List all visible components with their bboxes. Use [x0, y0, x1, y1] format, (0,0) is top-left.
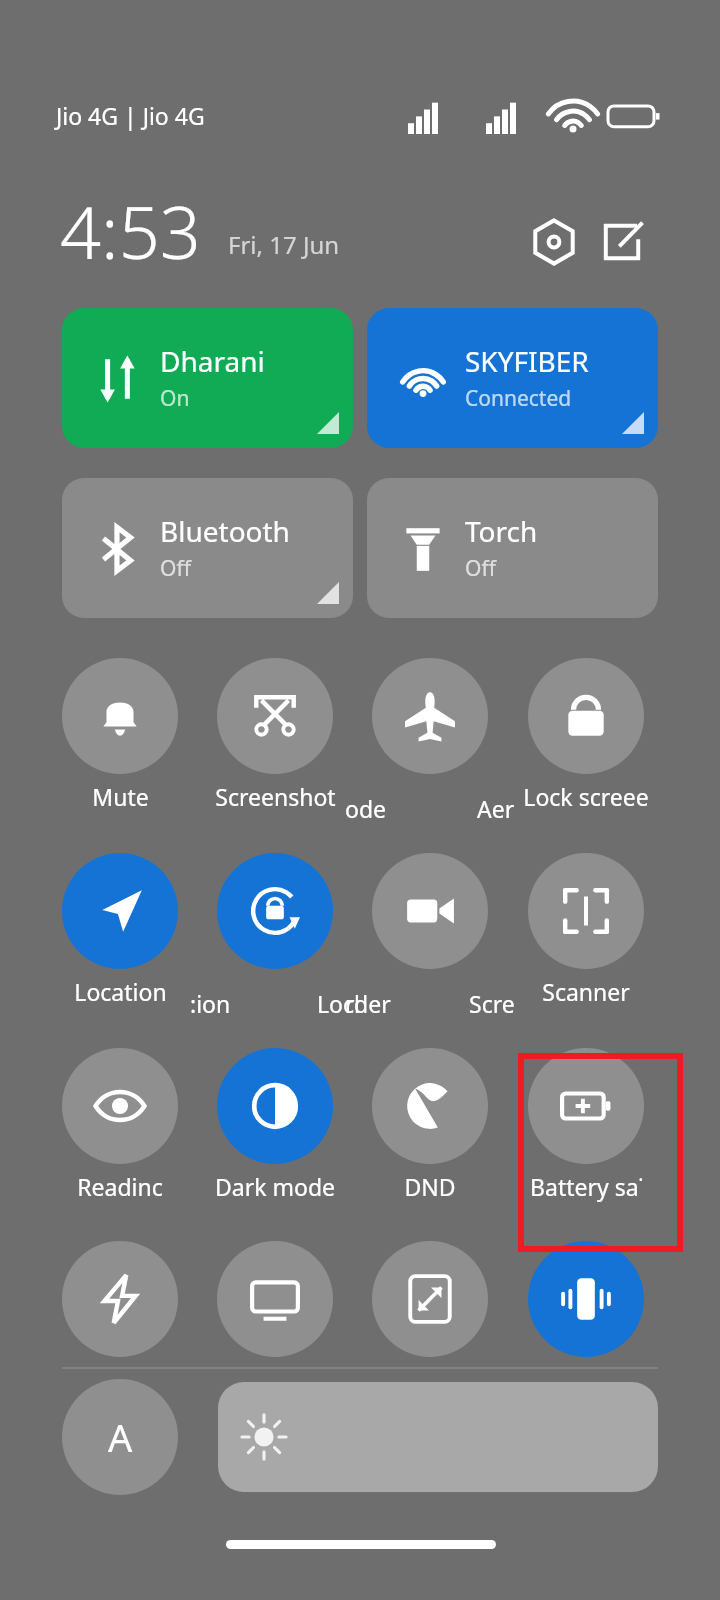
button[interactable]: Quick setting — [217, 1241, 333, 1357]
staticText: Jio 4G | Jio 4G — [56, 100, 205, 131]
staticText: ode — [345, 793, 387, 824]
staticText: Torch — [465, 512, 538, 550]
staticText: DND — [404, 1171, 456, 1202]
button[interactable]: Bluetooth — [62, 478, 353, 618]
staticText: Location — [74, 976, 167, 1007]
button[interactable]: Dark mode — [217, 1048, 333, 1164]
staticText: :ion — [190, 988, 231, 1019]
staticText: Scre — [469, 988, 515, 1019]
button[interactable]: SKYFIBER — [367, 308, 658, 448]
staticText: Off — [465, 554, 496, 583]
staticText: On — [160, 384, 190, 413]
staticText: Screenshot — [215, 781, 336, 812]
button[interactable]: Quick setting — [372, 1241, 488, 1357]
button[interactable]: Settings — [527, 215, 581, 269]
staticText: Dharani — [160, 342, 265, 380]
staticText: rder — [345, 988, 391, 1019]
button[interactable]: Auto brightness — [62, 1379, 178, 1495]
staticText: Lock screee — [523, 781, 649, 812]
button[interactable]: Lock screee — [528, 658, 644, 774]
button[interactable]: Screenshot — [217, 658, 333, 774]
button[interactable]: Edit — [595, 215, 649, 269]
button[interactable]: Location — [62, 853, 178, 969]
staticText: Bluetooth — [160, 512, 290, 550]
button[interactable]: Torch — [367, 478, 658, 618]
button[interactable]: Scanner — [528, 853, 644, 969]
button[interactable]: Quick setting — [528, 1241, 644, 1357]
button[interactable]: Brightness — [218, 1382, 658, 1492]
button[interactable]: Mute — [62, 658, 178, 774]
staticText: 4:53 — [60, 182, 201, 280]
button[interactable]: Battery sa˙ — [528, 1048, 644, 1164]
staticText: Readinc — [77, 1171, 163, 1202]
staticText: Fri, 17 Jun — [228, 228, 340, 261]
staticText: Aer — [477, 793, 515, 824]
button[interactable]: Quick setting — [372, 853, 488, 969]
staticText: A — [108, 1411, 133, 1463]
staticText: Battery sa˙ — [530, 1171, 643, 1202]
button[interactable]: Quick setting — [372, 658, 488, 774]
button[interactable]: DND — [372, 1048, 488, 1164]
staticText: Connected — [465, 384, 572, 413]
staticText: Locl — [317, 988, 360, 1019]
staticText: Scanner — [542, 976, 630, 1007]
button[interactable]: Quick setting — [62, 1241, 178, 1357]
button[interactable]: Quick setting — [217, 853, 333, 969]
button[interactable]: Dharani — [62, 308, 353, 448]
button[interactable]: Readinc — [62, 1048, 178, 1164]
staticText: Off — [160, 554, 191, 583]
staticText: Mute — [92, 781, 149, 812]
staticText: SKYFIBER — [465, 342, 589, 380]
staticText: Dark mode — [215, 1171, 335, 1202]
